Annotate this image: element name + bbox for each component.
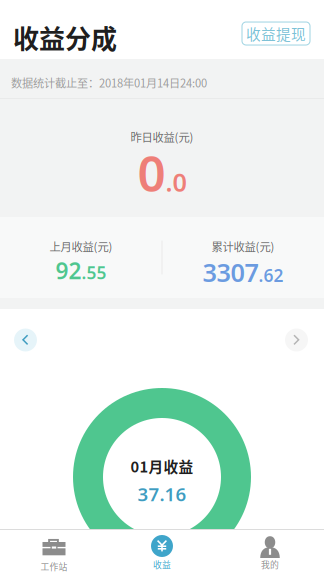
staticText: 数据统计截止至：2018年01月14日24:00 [11,74,207,91]
staticText: 收益提现 [246,23,306,44]
staticText: .62 [258,264,283,287]
staticText: 37.16 [137,482,186,506]
staticText: 上月收益(元) [49,238,112,254]
staticText: 累计收益(元) [211,238,274,254]
staticText: 收益分成 [13,19,117,56]
staticText: .55 [81,261,106,284]
button[interactable]: 我的 [216,530,324,576]
staticText: 3307 [202,255,258,289]
button[interactable]: 收益提现 [242,22,310,45]
staticText: 92 [55,255,81,285]
staticText: 昨日收益(元) [130,128,193,145]
button[interactable]: 收益 [108,530,216,576]
staticText: 收益 [153,558,171,571]
button[interactable]: Previous month [14,328,37,351]
button[interactable]: 工作站 [0,530,108,576]
staticText: 我的 [261,558,279,571]
staticText: 01月收益 [130,455,193,477]
staticText: .0 [165,165,186,199]
button[interactable]: Next month [285,328,308,351]
staticText: 工作站 [40,560,67,573]
staticText: 0 [137,140,165,205]
